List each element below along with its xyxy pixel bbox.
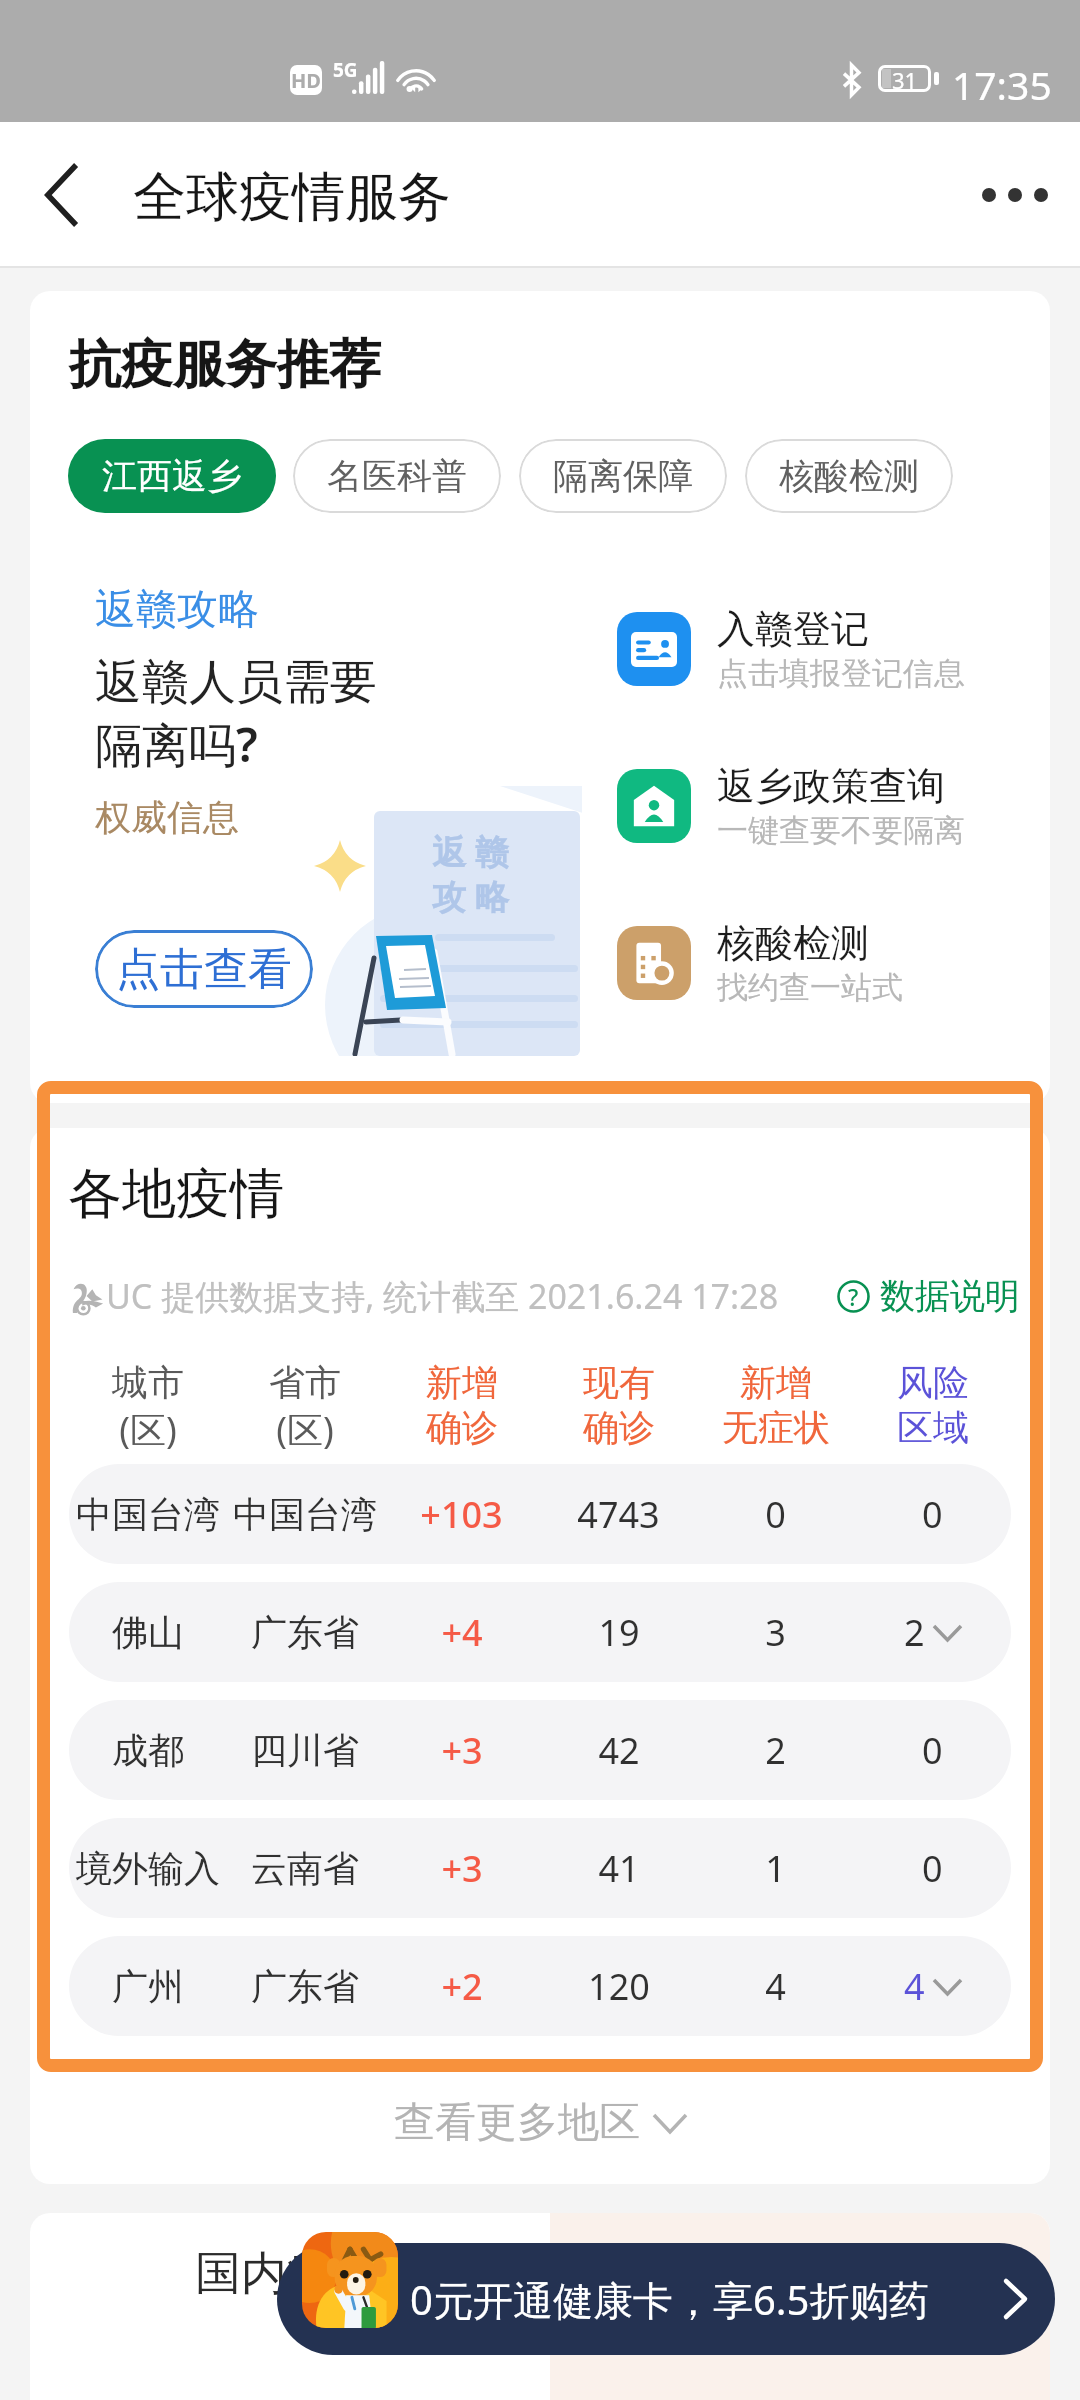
staticText: +103 <box>420 1490 503 1539</box>
button[interactable]: 广州 <box>69 1936 1011 2036</box>
staticText: 广东省 <box>251 1610 359 1655</box>
staticText: 全球疫情服务 <box>133 164 451 231</box>
staticText: 4743 <box>577 1490 660 1539</box>
staticText: 江西返乡 <box>102 454 242 498</box>
staticText: 隔离吗? <box>95 712 258 776</box>
staticText: 0 <box>922 1490 943 1539</box>
button[interactable]: 0元开通健康卡，享6.5折购药 <box>277 2243 1055 2355</box>
staticText: 核酸检测 <box>779 454 919 498</box>
staticText: 1 <box>765 1844 786 1893</box>
staticText: 云南省 <box>251 1846 359 1891</box>
button[interactable]: 核酸检测 <box>745 439 953 513</box>
staticText: 攻 略 <box>432 873 509 919</box>
button[interactable]: 名医科普 <box>293 439 501 513</box>
button[interactable]: 境外输入 <box>69 1818 1011 1918</box>
staticText: 城市 <box>112 1360 184 1405</box>
button[interactable]: 核酸检测 <box>617 903 1037 1023</box>
staticText: 120 <box>588 1962 650 2011</box>
staticText: 核酸检测 <box>717 919 869 967</box>
button[interactable]: 查看更多地区 <box>30 2083 1050 2163</box>
staticText: 0元开通健康卡，享6.5折购药 <box>410 2272 930 2327</box>
staticText: 各地疫情 <box>68 1160 284 1228</box>
staticText: 省市 <box>269 1360 341 1405</box>
staticText: 4 <box>904 1962 925 2011</box>
staticText: 佛山 <box>112 1610 184 1655</box>
staticText: 3 <box>765 1608 786 1657</box>
staticText: 确诊 <box>583 1405 655 1450</box>
staticText: 入赣登记 <box>717 605 869 653</box>
staticText: +4 <box>441 1608 483 1657</box>
staticText: 四川省 <box>251 1728 359 1773</box>
button[interactable]: 佛山 <box>69 1582 1011 1682</box>
staticText: 一键查要不要隔离 <box>717 811 965 850</box>
button[interactable]: More options <box>950 122 1080 268</box>
button[interactable]: 返乡政策查询 <box>617 746 1037 866</box>
staticText: 风险 <box>897 1360 969 1405</box>
staticText: 0 <box>922 1844 943 1893</box>
staticText: HD <box>291 67 321 94</box>
staticText: ? <box>848 1281 859 1312</box>
staticText: 新增 <box>740 1360 812 1405</box>
staticText: 查看更多地区 <box>394 2097 640 2149</box>
staticText: +2 <box>441 1962 483 2011</box>
staticText: 0 <box>765 1490 786 1539</box>
staticText: 0 <box>922 1726 943 1775</box>
staticText: +3 <box>441 1844 483 1893</box>
staticText: UC 提供数据支持, 统计截至 2021.6.24 17:28 <box>106 1273 779 1319</box>
staticText: (区) <box>119 1405 177 1454</box>
button[interactable]: 入赣登记 <box>617 589 1037 709</box>
staticText: 境外输入 <box>76 1846 220 1891</box>
button[interactable]: 中国台湾 <box>69 1464 1011 1564</box>
staticText: 广州 <box>112 1964 184 2009</box>
staticText: 抗疫服务推荐 <box>69 332 381 398</box>
staticText: 点击填报登记信息 <box>717 654 965 693</box>
staticText: 2 <box>765 1726 786 1775</box>
staticText: 数据说明 <box>880 1274 1020 1318</box>
staticText: 无症状 <box>722 1405 830 1450</box>
staticText: 2 <box>904 1608 925 1657</box>
staticText: +3 <box>441 1726 483 1775</box>
staticText: 确诊 <box>426 1405 498 1450</box>
button[interactable]: Back <box>0 122 122 268</box>
staticText: 隔离保障 <box>553 454 693 498</box>
button[interactable]: 江西返乡 <box>68 439 276 513</box>
staticText: 现有 <box>583 1360 655 1405</box>
staticText: 返赣人员需要 <box>95 653 377 712</box>
staticText: 返乡政策查询 <box>717 762 945 810</box>
staticText: 17:35 <box>952 58 1052 111</box>
staticText: 41 <box>598 1844 640 1893</box>
staticText: 4 <box>765 1962 786 2011</box>
staticText: 返赣攻略 <box>95 584 259 636</box>
button[interactable]: 成都 <box>69 1700 1011 1800</box>
staticText: 新增 <box>426 1360 498 1405</box>
staticText: 42 <box>598 1726 640 1775</box>
staticText: 名医科普 <box>327 454 467 498</box>
staticText: 中国台湾 <box>233 1492 377 1537</box>
staticText: 点击查看 <box>116 942 292 997</box>
button[interactable]: 隔离保障 <box>519 439 727 513</box>
button[interactable]: ? <box>837 1274 1020 1318</box>
button[interactable]: 点击查看 <box>95 930 313 1008</box>
staticText: (区) <box>276 1405 334 1454</box>
staticText: 成都 <box>112 1728 184 1773</box>
staticText: 5G <box>333 57 358 83</box>
staticText: 广东省 <box>251 1964 359 2009</box>
staticText: 中国台湾 <box>76 1492 220 1537</box>
staticText: 19 <box>598 1608 640 1657</box>
staticText: 区域 <box>897 1405 969 1450</box>
staticText: 权威信息 <box>95 795 239 840</box>
staticText: 国内疫情 <box>195 2245 379 2303</box>
staticText: 31 <box>892 65 918 92</box>
staticText: 找约查一站式 <box>717 968 903 1007</box>
staticText: 返 赣 <box>432 828 509 874</box>
